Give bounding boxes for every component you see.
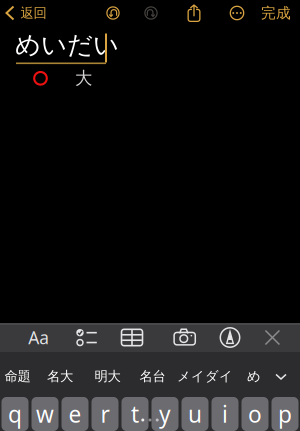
button[interactable]: Aa — [19, 323, 59, 352]
button[interactable]: p — [271, 397, 298, 431]
button[interactable]: t — [121, 397, 148, 431]
staticText: 命題 — [4, 368, 30, 385]
button[interactable]: o — [241, 397, 268, 431]
button[interactable]: Undo — [98, 0, 128, 26]
button[interactable]: e — [61, 397, 88, 431]
button[interactable]: Checklist — [66, 323, 106, 352]
staticText: 返回 — [20, 5, 46, 21]
button[interactable]: め — [244, 356, 264, 396]
button[interactable]: r — [91, 397, 118, 431]
button[interactable]: 返回 — [0, 0, 51, 26]
button[interactable]: Markup — [210, 323, 250, 352]
button[interactable]: Close — [252, 323, 292, 352]
staticText: i — [222, 399, 228, 429]
button[interactable]: Table — [112, 323, 152, 352]
button[interactable]: 完成 — [257, 0, 295, 26]
staticText: o — [248, 399, 262, 429]
button[interactable]: u — [181, 397, 208, 431]
staticText: めいだい — [15, 29, 119, 60]
button[interactable]: Redo — [136, 0, 166, 26]
button[interactable]: More — [222, 0, 252, 26]
staticText: w — [36, 399, 54, 429]
button[interactable]: Camera — [165, 323, 205, 352]
button[interactable]: i — [211, 397, 238, 431]
staticText: Aa — [28, 326, 49, 349]
staticText: 完成 — [261, 4, 291, 22]
staticText: 名大 — [47, 368, 73, 385]
button[interactable]: 名台 — [133, 356, 171, 396]
button[interactable]: More candidates — [268, 356, 294, 396]
button[interactable]: 命題 — [0, 356, 36, 396]
button[interactable]: メイダイ — [176, 356, 234, 396]
staticText: 大 — [75, 68, 92, 89]
button[interactable]: 明大 — [88, 356, 126, 396]
button[interactable]: w — [31, 397, 58, 431]
button[interactable]: y — [151, 397, 178, 431]
staticText: 明大 — [94, 368, 120, 385]
button[interactable]: Share — [179, 0, 209, 26]
staticText: r — [100, 399, 109, 429]
staticText: p — [278, 399, 292, 429]
staticText: u — [188, 399, 202, 429]
staticText: メイダイ — [177, 368, 233, 385]
button[interactable]: q — [1, 397, 28, 431]
staticText: y — [159, 399, 171, 429]
staticText: 名台 — [139, 368, 165, 385]
button[interactable]: 名大 — [41, 356, 79, 396]
staticText: t — [131, 399, 139, 429]
staticText: e — [68, 399, 81, 429]
staticText: q — [8, 399, 22, 429]
staticText: め — [247, 368, 261, 385]
